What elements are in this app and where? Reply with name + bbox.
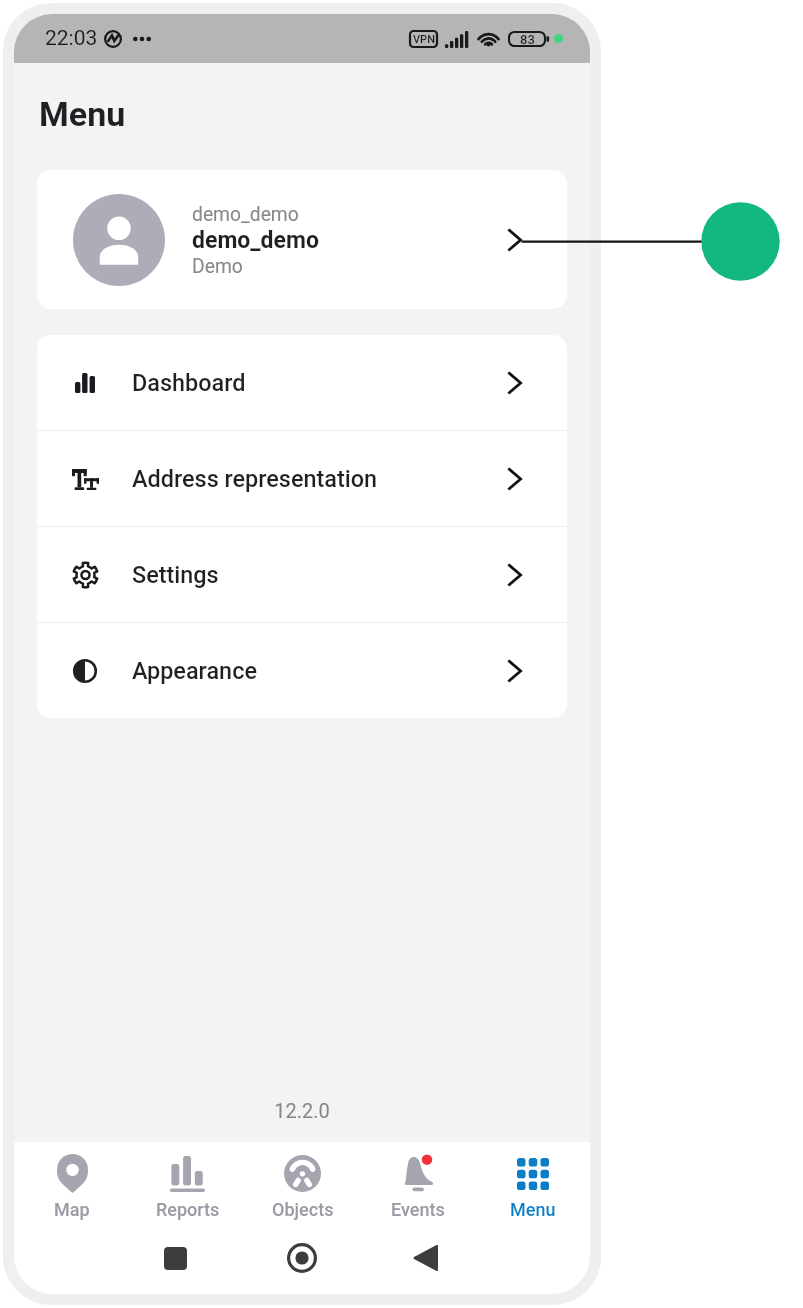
staticText: Menu — [39, 94, 126, 134]
staticText: Menu — [510, 1199, 556, 1220]
button[interactable]: Appearance — [37, 623, 567, 718]
staticText: Settings — [132, 561, 219, 588]
button[interactable]: Settings — [37, 527, 567, 622]
staticText: VPN — [413, 33, 435, 46]
staticText: Dashboard — [132, 369, 246, 396]
staticText: 22:03 — [45, 26, 98, 51]
staticText: demo_demo — [192, 203, 299, 226]
staticText: Address representation — [132, 465, 378, 492]
staticText: Demo — [192, 255, 243, 278]
staticText: Events — [391, 1199, 445, 1220]
button[interactable]: Home — [280, 1236, 324, 1280]
button[interactable]: Events — [360, 1142, 475, 1222]
button[interactable]: Reports — [130, 1142, 245, 1222]
staticText: Objects — [272, 1199, 334, 1220]
staticText: 12.2.0 — [14, 1099, 590, 1122]
button[interactable]: Address representation — [37, 431, 567, 526]
staticText: demo_demo — [192, 227, 319, 254]
staticText: Appearance — [132, 657, 257, 684]
staticText: 83 — [520, 32, 535, 46]
button[interactable]: Map — [14, 1142, 130, 1222]
button[interactable]: Objects — [245, 1142, 360, 1222]
staticText: Reports — [156, 1199, 220, 1220]
button[interactable]: Recents — [153, 1236, 197, 1280]
staticText: Map — [54, 1199, 90, 1220]
button[interactable]: demo_demo — [37, 170, 567, 309]
button[interactable]: Dashboard — [37, 335, 567, 430]
button[interactable]: Back — [403, 1236, 447, 1280]
button[interactable]: Menu — [475, 1142, 590, 1222]
